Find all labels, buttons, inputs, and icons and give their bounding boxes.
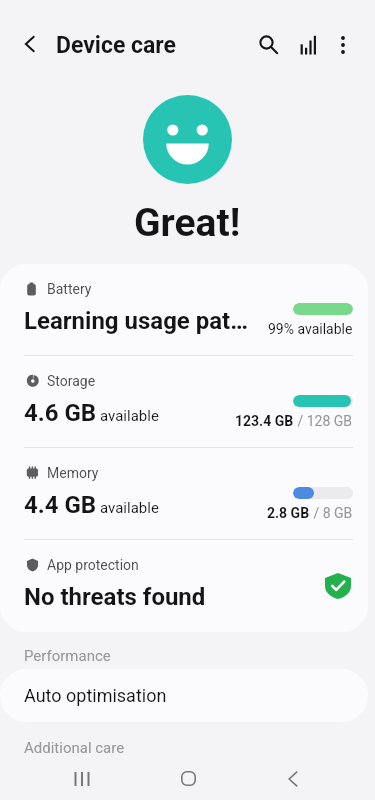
staticText: 2.8 GB [267,505,310,521]
staticText: Auto optimisation [24,685,167,706]
staticText: available [100,407,159,425]
button[interactable]: App protection [0,540,368,632]
staticText: 99% available [268,321,353,337]
button[interactable]: Storage [0,356,368,447]
button[interactable]: Recent apps [58,757,106,800]
staticText: Device care [56,32,176,59]
staticText: / 128 GB [294,413,353,429]
button[interactable]: Search [249,25,289,65]
staticText: Memory [47,465,99,481]
staticText: Additional care [24,739,125,757]
button[interactable]: Back [269,757,317,800]
staticText: App protection [47,557,139,573]
staticText: 4.6 GB [24,399,97,427]
button[interactable]: Usage statistics [288,25,328,65]
staticText: Great! [134,200,241,246]
staticText: available [100,499,159,517]
button[interactable]: Memory [0,448,368,539]
button[interactable]: Battery [0,264,368,355]
button[interactable]: Auto optimisation [0,669,368,722]
button[interactable]: Navigate up [10,24,50,64]
staticText: No threats found [24,583,206,611]
staticText: Learning usage pat... [24,307,250,335]
button[interactable]: Home [164,757,212,800]
staticText: Storage [47,373,96,389]
staticText: Battery [47,281,92,297]
staticText: 4.4 GB [24,491,97,519]
staticText: 123.4 GB [235,413,294,429]
button[interactable]: More options [323,25,363,65]
staticText: / 8 GB [310,505,353,521]
staticText: Performance [24,647,111,665]
